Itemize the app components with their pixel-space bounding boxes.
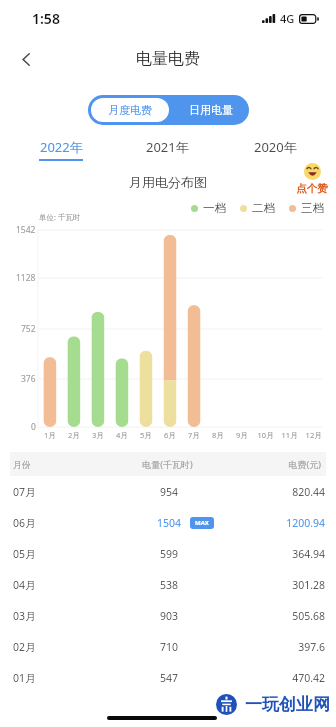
staticText: 电量(千瓦时) <box>103 458 232 470</box>
staticText: 547 <box>160 671 179 685</box>
staticText: 一档 <box>203 201 226 215</box>
staticText: 364.94 <box>235 547 325 561</box>
button[interactable]: 01月 <box>0 662 336 693</box>
staticText: 397.6 <box>235 640 325 654</box>
staticText: 2021年 <box>146 138 189 156</box>
staticText: 505.68 <box>235 609 325 623</box>
staticText: 1200.94 <box>235 516 325 530</box>
button[interactable]: 03月 <box>0 600 336 631</box>
staticText: 日用电量 <box>189 103 233 117</box>
button[interactable]: 07月 <box>0 476 336 507</box>
staticText: 电量电费 <box>136 49 200 69</box>
button[interactable]: Back <box>9 42 43 76</box>
staticText: 4G <box>280 11 295 26</box>
staticText: 903 <box>160 609 179 623</box>
staticText: 三档 <box>301 201 324 215</box>
staticText: 2022年 <box>40 138 83 156</box>
staticText: 03月 <box>13 609 104 623</box>
staticText: 月份 <box>13 459 103 470</box>
button[interactable]: 04月 <box>0 569 336 600</box>
staticText: 月度电费 <box>108 103 152 117</box>
button[interactable]: 日用电量 <box>172 95 249 125</box>
staticText: 05月 <box>13 547 104 561</box>
button[interactable]: 05月 <box>0 538 336 569</box>
staticText: 06月 <box>13 516 104 530</box>
staticText: 301.28 <box>235 578 325 592</box>
staticText: 1:58 <box>32 9 60 28</box>
button[interactable]: 2022年 <box>0 127 112 163</box>
staticText: 1504 <box>157 516 182 530</box>
staticText: 单位: 千瓦时 <box>39 212 81 222</box>
staticText: 710 <box>160 640 179 654</box>
staticText: 820.44 <box>235 485 325 499</box>
button[interactable]: 月度电费 <box>91 98 169 122</box>
staticText: 02月 <box>13 640 104 654</box>
staticText: 一玩创业网 <box>245 694 330 715</box>
staticText: 07月 <box>13 485 104 499</box>
staticText: 599 <box>160 547 179 561</box>
staticText: 电费(元) <box>232 458 321 470</box>
button[interactable]: 02月 <box>0 631 336 662</box>
button[interactable]: 点个赞 <box>292 163 332 195</box>
staticText: 二档 <box>252 201 275 215</box>
button[interactable]: 2020年 <box>224 127 336 163</box>
button[interactable]: 2021年 <box>112 127 224 163</box>
staticText: 04月 <box>13 578 104 592</box>
staticText: 954 <box>160 485 179 499</box>
staticText: 月用电分布图 <box>129 174 207 190</box>
staticText: 点个赞 <box>296 182 328 195</box>
staticText: 470.42 <box>235 671 325 685</box>
button[interactable]: 06月 <box>0 507 336 538</box>
staticText: 2020年 <box>254 138 297 156</box>
staticText: 01月 <box>13 671 104 685</box>
staticText: 538 <box>160 578 179 592</box>
staticText: MAX <box>195 519 209 527</box>
